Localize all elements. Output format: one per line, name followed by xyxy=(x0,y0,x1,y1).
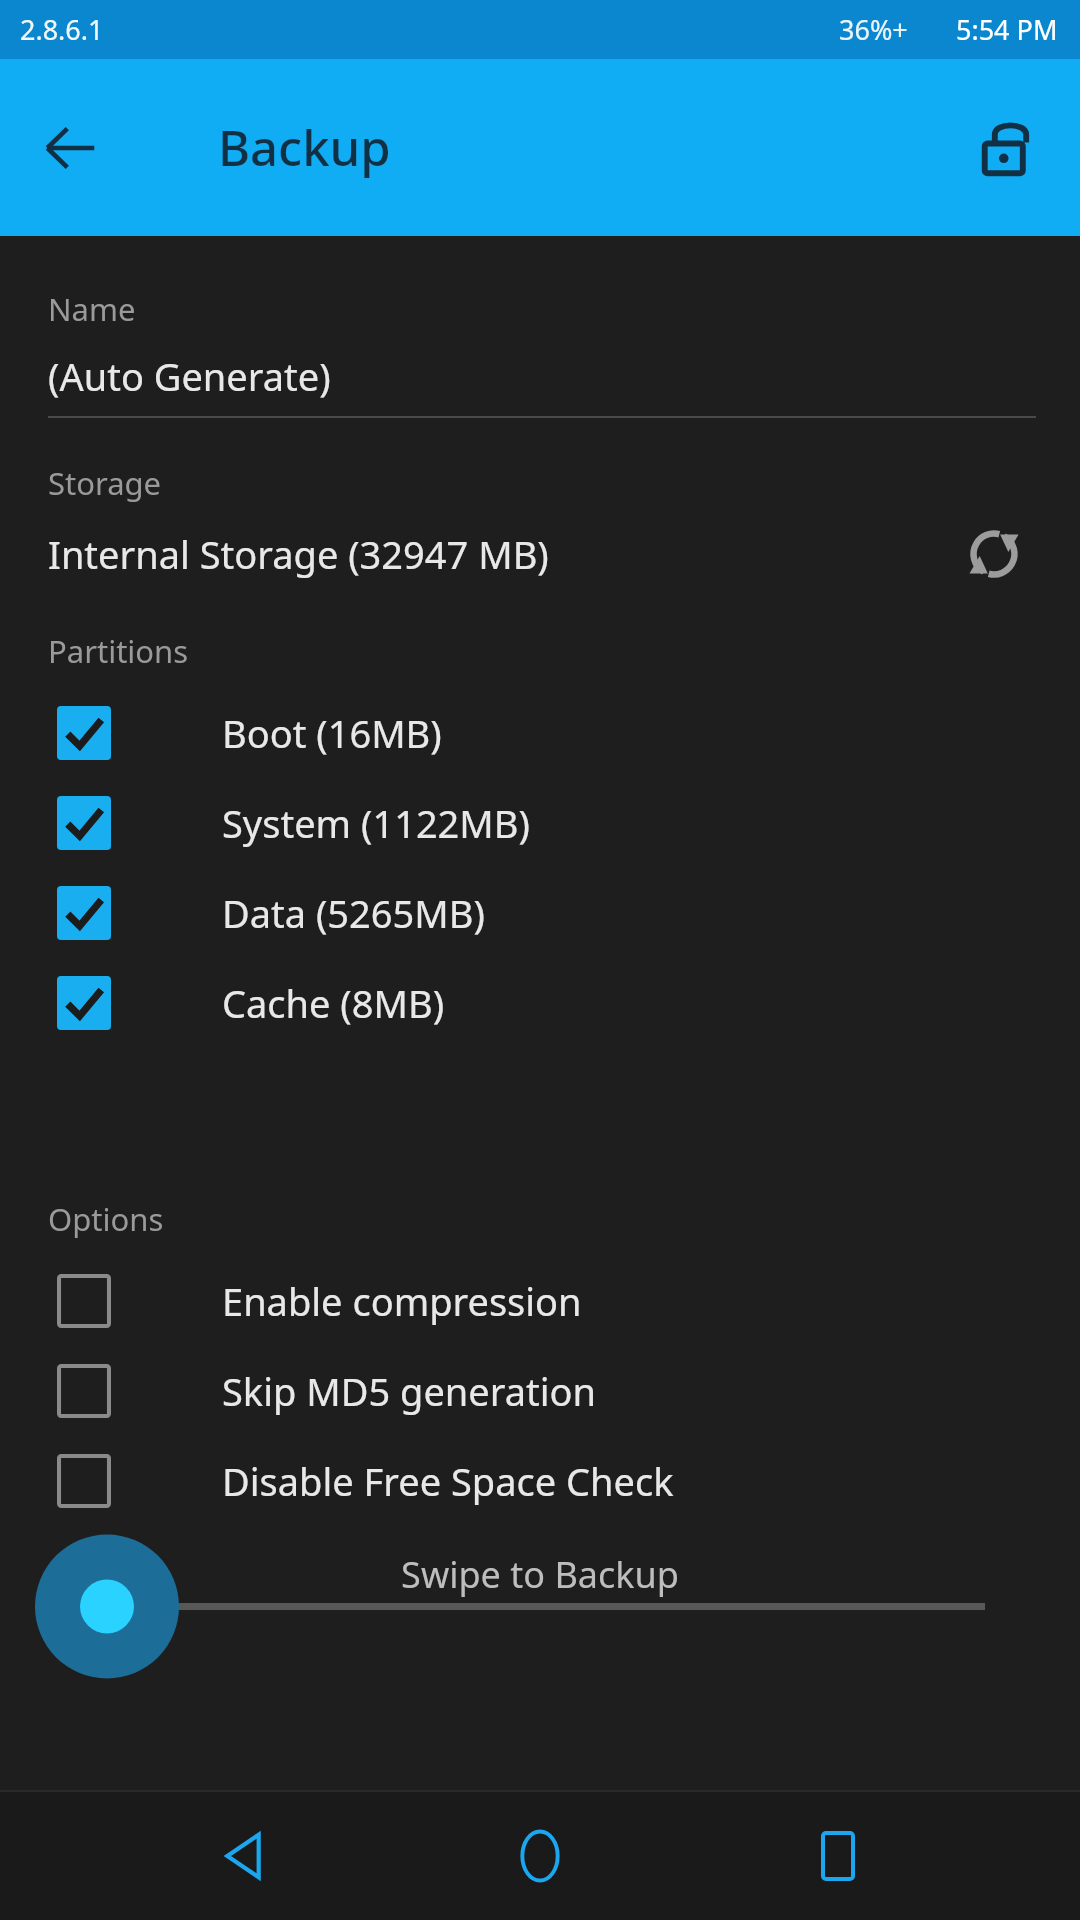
button[interactable]: Back xyxy=(34,112,106,184)
staticText: (Auto Generate) xyxy=(48,350,331,402)
button[interactable]: (Auto Generate) xyxy=(48,350,1036,418)
button[interactable]: Refresh storage xyxy=(958,518,1030,590)
button[interactable]: Data (5265MB) xyxy=(0,868,1080,958)
staticText: Boot (16MB) xyxy=(222,707,442,759)
button[interactable]: Home xyxy=(485,1801,595,1911)
button[interactable]: Swipe to Backup xyxy=(0,1536,1080,1686)
button[interactable]: System (1122MB) xyxy=(0,778,1080,868)
button[interactable]: Disable Free Space Check xyxy=(0,1436,1080,1526)
staticText: System (1122MB) xyxy=(222,797,530,849)
button[interactable]: Enable compression xyxy=(0,1256,1080,1346)
staticText: Cache (8MB) xyxy=(222,977,445,1029)
button[interactable]: Back xyxy=(188,1801,298,1911)
staticText: 2.8.6.1 xyxy=(20,11,104,48)
button[interactable]: Cache (8MB) xyxy=(0,958,1080,1048)
staticText: Backup xyxy=(218,114,391,181)
staticText: Options xyxy=(48,1198,164,1240)
staticText: 36%+ xyxy=(839,11,908,48)
staticText: 5:54 PM xyxy=(956,11,1058,48)
staticText: Data (5265MB) xyxy=(222,887,485,939)
button[interactable]: Recent apps xyxy=(783,1801,893,1911)
staticText: Swipe to Backup xyxy=(0,1550,1080,1599)
staticText: Storage xyxy=(48,462,162,504)
button[interactable]: Skip MD5 generation xyxy=(0,1346,1080,1436)
staticText: Skip MD5 generation xyxy=(222,1365,596,1417)
staticText: Name xyxy=(48,288,136,330)
button[interactable]: Unlock xyxy=(968,110,1044,186)
button[interactable]: Boot (16MB) xyxy=(0,688,1080,778)
staticText: Disable Free Space Check xyxy=(222,1455,674,1507)
staticText: Partitions xyxy=(48,630,189,672)
button[interactable]: Internal Storage (32947 MB) xyxy=(48,528,958,580)
staticText: Enable compression xyxy=(222,1275,582,1327)
